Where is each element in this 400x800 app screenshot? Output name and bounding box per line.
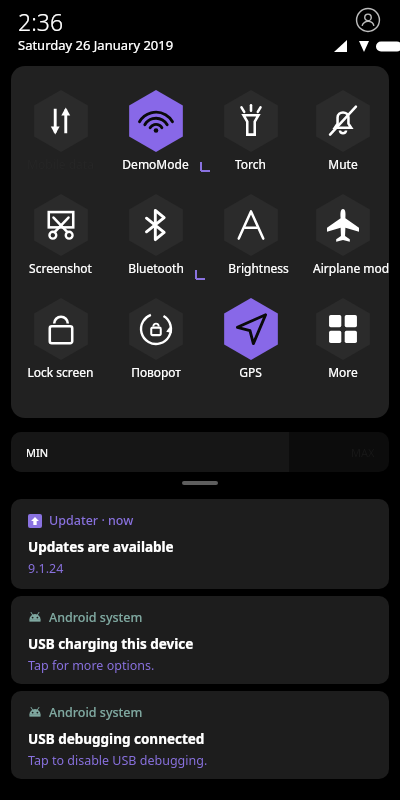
staticText: Torch (235, 156, 266, 172)
button[interactable]: Mobile data (13, 90, 108, 172)
button[interactable]: Android system (11, 691, 389, 779)
button[interactable]: More (298, 298, 387, 380)
button[interactable]: Updater · now (11, 499, 389, 589)
staticText: Brightness (228, 260, 289, 276)
staticText: Tap to disable USB debugging. (28, 752, 208, 769)
staticText: Поворот (131, 364, 181, 380)
staticText: Tap for more options. (28, 657, 155, 674)
staticText: Updates are available (28, 538, 174, 556)
button[interactable]: User account (355, 7, 381, 33)
staticText: USB charging this device (28, 635, 194, 653)
staticText: USB debugging connected (28, 730, 205, 748)
staticText: 9.1.24 (28, 560, 64, 577)
button[interactable]: DemoMode (108, 90, 203, 172)
button[interactable]: Lock screen (13, 298, 108, 380)
staticText: Android system (49, 704, 143, 721)
staticText: Updater · now (49, 512, 134, 529)
staticText: 2:36 (18, 6, 64, 37)
button[interactable]: Brightness (203, 194, 298, 276)
staticText: Lock screen (27, 364, 94, 380)
staticText: Mute (328, 156, 358, 172)
staticText: GPS (239, 364, 262, 380)
staticText: Android system (49, 609, 143, 626)
staticText: More (328, 364, 358, 380)
button[interactable]: Поворот (108, 298, 203, 380)
button[interactable]: Airplane mode (298, 194, 387, 276)
staticText: Saturday 26 January 2019 (18, 36, 174, 54)
button[interactable]: Screenshot (13, 194, 108, 276)
staticText: MIN (26, 445, 49, 460)
staticText: Screenshot (29, 260, 92, 276)
button[interactable]: Android system (11, 596, 389, 684)
button[interactable]: GPS (203, 298, 298, 380)
button[interactable]: Bluetooth (108, 194, 203, 276)
staticText: DemoMode (122, 156, 189, 172)
button[interactable]: Torch (203, 90, 298, 172)
button[interactable]: MIN (11, 432, 389, 472)
button[interactable]: Mute (298, 90, 387, 172)
staticText: Bluetooth (128, 260, 184, 276)
staticText: Airplane mode (313, 260, 389, 276)
staticText: MAX (351, 445, 375, 460)
